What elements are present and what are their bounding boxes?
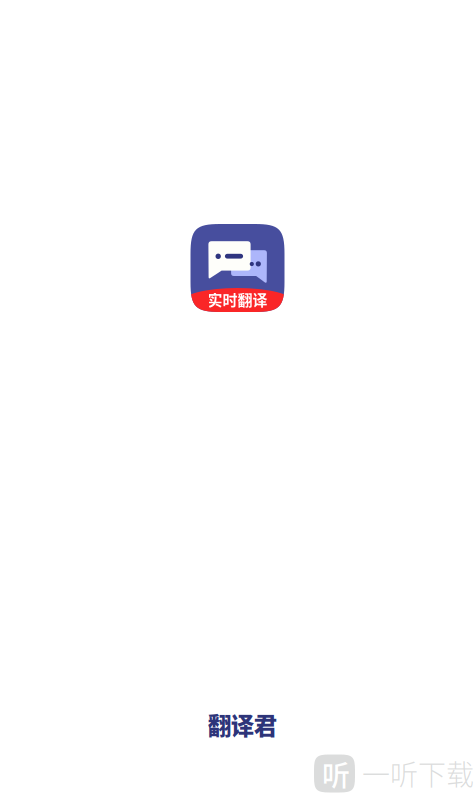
staticText: 实时翻译 bbox=[207, 288, 267, 310]
staticText: 一听下载 bbox=[362, 753, 474, 794]
staticText: 听 bbox=[322, 754, 350, 794]
staticText: 翻译君 bbox=[208, 707, 277, 741]
